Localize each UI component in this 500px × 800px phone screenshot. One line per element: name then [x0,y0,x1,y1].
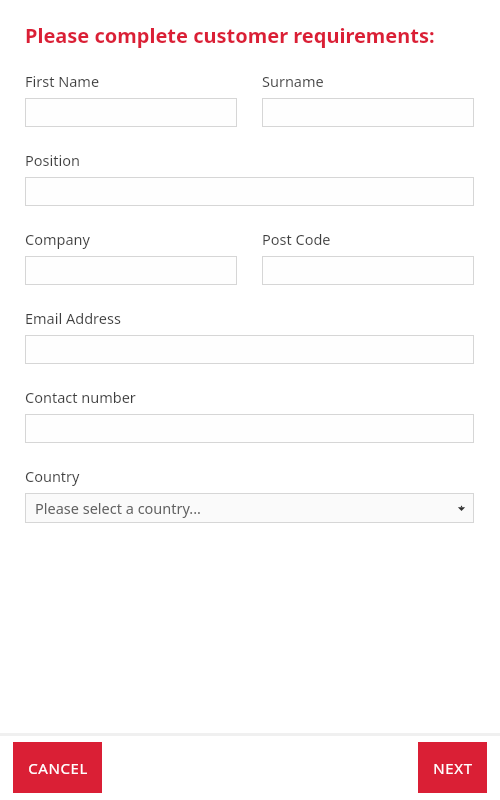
staticText: Position [25,150,80,170]
staticText: Contact number [25,387,136,407]
staticText: Post Code [262,229,331,249]
button[interactable]: Select a country [25,493,474,523]
button[interactable]: Text input field [262,98,474,127]
button[interactable]: Text input field [25,98,237,127]
button[interactable]: Text input field [25,177,474,206]
button[interactable]: Text input field [25,414,474,443]
button[interactable]: NEXT [418,742,487,793]
staticText: CANCEL [28,758,88,778]
staticText: Surname [262,71,324,91]
button[interactable]: Text input field [262,256,474,285]
staticText: First Name [25,71,100,91]
staticText: Country [25,466,80,486]
staticText: Company [25,229,90,249]
button[interactable]: Text input field [25,256,237,285]
staticText: Please select a country... [35,498,201,518]
staticText: Please complete customer requirements: [25,22,435,49]
staticText: NEXT [433,758,473,778]
button[interactable]: CANCEL [13,742,102,793]
button[interactable]: Text input field [25,335,474,364]
staticText: Email Address [25,308,121,328]
